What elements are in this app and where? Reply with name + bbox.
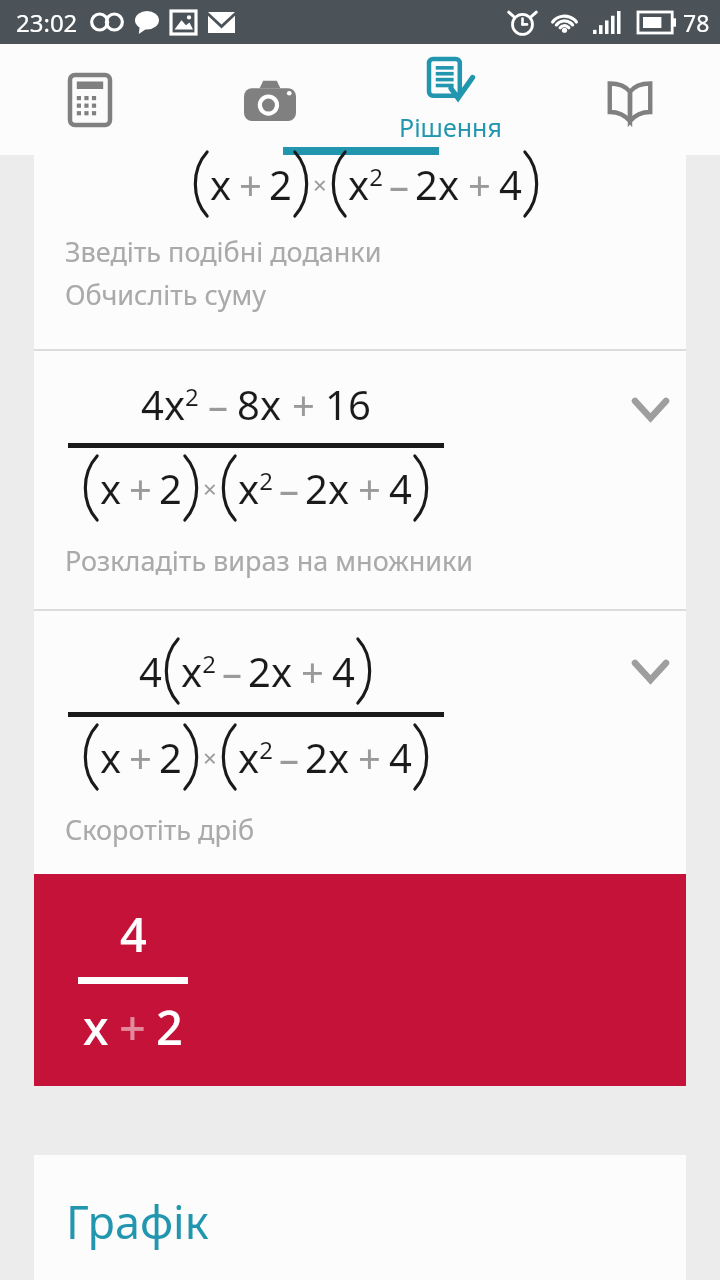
staticText: 4x2: [141, 377, 199, 431]
staticText: ×: [203, 472, 217, 505]
staticText: +: [119, 995, 146, 1059]
button[interactable]: Графік: [34, 1155, 686, 1280]
staticText: x: [83, 995, 109, 1059]
staticText: +: [129, 461, 152, 515]
staticText: ×: [203, 741, 217, 774]
staticText: –: [279, 461, 299, 515]
staticText: 8x: [237, 377, 282, 431]
button[interactable]: Camera: [180, 44, 360, 155]
staticText: +: [358, 730, 381, 784]
staticText: 4: [499, 157, 522, 211]
staticText: –: [208, 377, 228, 431]
button[interactable]: Expand step: [620, 379, 680, 439]
staticText: 4: [332, 644, 355, 698]
staticText: x2: [181, 644, 216, 698]
staticText: x2: [238, 730, 273, 784]
staticText: 4: [389, 461, 412, 515]
staticText: Скоротіть дріб: [65, 811, 254, 848]
staticText: x2: [238, 461, 273, 515]
staticText: 2: [269, 157, 292, 211]
staticText: +: [301, 644, 324, 698]
staticText: Графік: [66, 1191, 209, 1252]
staticText: –: [222, 644, 242, 698]
staticText: 16: [325, 377, 371, 431]
staticText: +: [292, 377, 315, 431]
staticText: x: [100, 730, 122, 784]
staticText: x: [210, 157, 232, 211]
staticText: +: [129, 730, 152, 784]
staticText: 23:02: [16, 6, 78, 39]
button[interactable]: Рішення: [360, 44, 540, 155]
staticText: 78: [683, 7, 710, 38]
button[interactable]: Expand step: [620, 641, 680, 701]
button[interactable]: Dictionary: [540, 44, 720, 155]
staticText: 4: [120, 902, 147, 966]
staticText: x2: [348, 157, 383, 211]
staticText: 2x: [248, 644, 293, 698]
staticText: Розкладіть вираз на множники: [65, 542, 474, 579]
staticText: –: [389, 157, 409, 211]
staticText: x: [100, 461, 122, 515]
staticText: +: [239, 157, 262, 211]
staticText: 4: [139, 644, 162, 698]
button[interactable]: Calculator: [0, 44, 180, 155]
staticText: Зведіть подібні доданки: [65, 233, 382, 270]
staticText: 2x: [305, 461, 350, 515]
staticText: +: [468, 157, 491, 211]
staticText: 2: [159, 730, 182, 784]
staticText: 2: [156, 995, 183, 1059]
staticText: Обчисліть суму: [65, 276, 267, 313]
staticText: 2: [159, 461, 182, 515]
staticText: ×: [313, 168, 327, 201]
staticText: 2x: [305, 730, 350, 784]
button[interactable]: 4: [34, 874, 686, 1086]
staticText: –: [279, 730, 299, 784]
staticText: 2x: [415, 157, 460, 211]
staticText: 4: [389, 730, 412, 784]
staticText: +: [358, 461, 381, 515]
staticText: Рішення: [399, 110, 502, 144]
